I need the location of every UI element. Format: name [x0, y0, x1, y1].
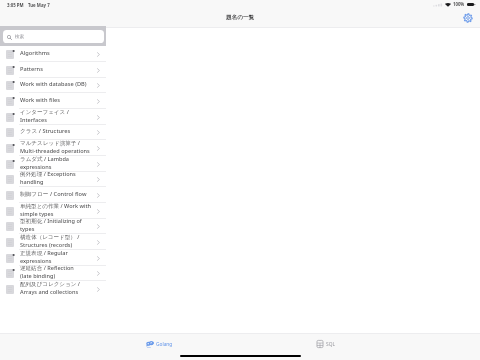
staticText: handling — [20, 178, 44, 186]
staticText: Patterns — [20, 65, 43, 73]
staticText: Structures (records) — [20, 241, 73, 249]
staticText: 制御フロー / Control flow — [20, 190, 87, 198]
button[interactable]: Patterns — [0, 62, 106, 78]
button[interactable]: マルチスレッド演算子 / — [0, 140, 106, 156]
staticText: Multi-threaded operations — [20, 147, 90, 155]
staticText: Arrays and collections — [20, 288, 79, 296]
staticText: ラムダ式 / Lambda — [20, 155, 70, 163]
staticText: クラス / Structures — [20, 127, 71, 135]
button[interactable]: 構造体（レコード型） / — [0, 234, 106, 250]
staticText: Work with database (DB) — [20, 80, 87, 88]
staticText: 3:05 PM — [7, 2, 24, 8]
button[interactable]: 検索 — [3, 30, 104, 43]
button[interactable]: 遅延結合 / Reflection — [0, 265, 106, 281]
staticText: SQL — [326, 341, 335, 348]
button[interactable]: インターフェイス / — [0, 109, 106, 125]
button[interactable]: ラムダ式 / Lambda — [0, 156, 106, 172]
button[interactable]: Algorithms — [0, 46, 106, 62]
button[interactable]: Work with files — [0, 93, 106, 109]
staticText: expressions — [20, 163, 52, 171]
button[interactable]: 単純型との作業 / Work with — [0, 203, 106, 219]
staticText: Interfaces — [20, 116, 47, 124]
staticText: 例外処理 / Exceptions — [20, 170, 76, 178]
staticText: 題名の一覧 — [226, 14, 255, 21]
button[interactable]: 制御フロー / Control flow — [0, 187, 106, 203]
staticText: 100% — [453, 1, 465, 7]
staticText: Algorithms — [20, 49, 50, 57]
staticText: 型初期化 / Initializing of — [20, 217, 82, 225]
staticText: 配列及びコレクション / — [20, 280, 80, 288]
staticText: Golang — [156, 341, 173, 348]
staticText: (late binding) — [20, 272, 56, 280]
button[interactable]: Settings — [463, 13, 473, 23]
staticText: types — [20, 225, 35, 233]
button[interactable]: 例外処理 / Exceptions — [0, 171, 106, 187]
staticText: simple types — [20, 210, 54, 218]
staticText: 単純型との作業 / Work with — [20, 202, 92, 210]
staticText: マルチスレッド演算子 / — [20, 139, 80, 147]
staticText: 構造体（レコード型） / — [20, 233, 80, 241]
staticText: expressions — [20, 257, 52, 265]
staticText: 正規表現 / Regular — [20, 249, 68, 257]
staticText: 検索 — [15, 34, 25, 40]
button[interactable]: 型初期化 / Initializing of — [0, 218, 106, 234]
button[interactable]: 配列及びコレクション / — [0, 281, 106, 297]
button[interactable]: 正規表現 / Regular — [0, 250, 106, 266]
staticText: 遅延結合 / Reflection — [20, 264, 74, 272]
staticText: Work with files — [20, 96, 60, 104]
staticText: Tue May 7 — [28, 2, 50, 8]
button[interactable]: クラス / Structures — [0, 124, 106, 140]
staticText: インターフェイス / — [20, 108, 69, 116]
button[interactable]: SQL — [316, 340, 335, 348]
button[interactable]: Golang — [146, 340, 173, 348]
button[interactable]: Work with database (DB) — [0, 77, 106, 93]
